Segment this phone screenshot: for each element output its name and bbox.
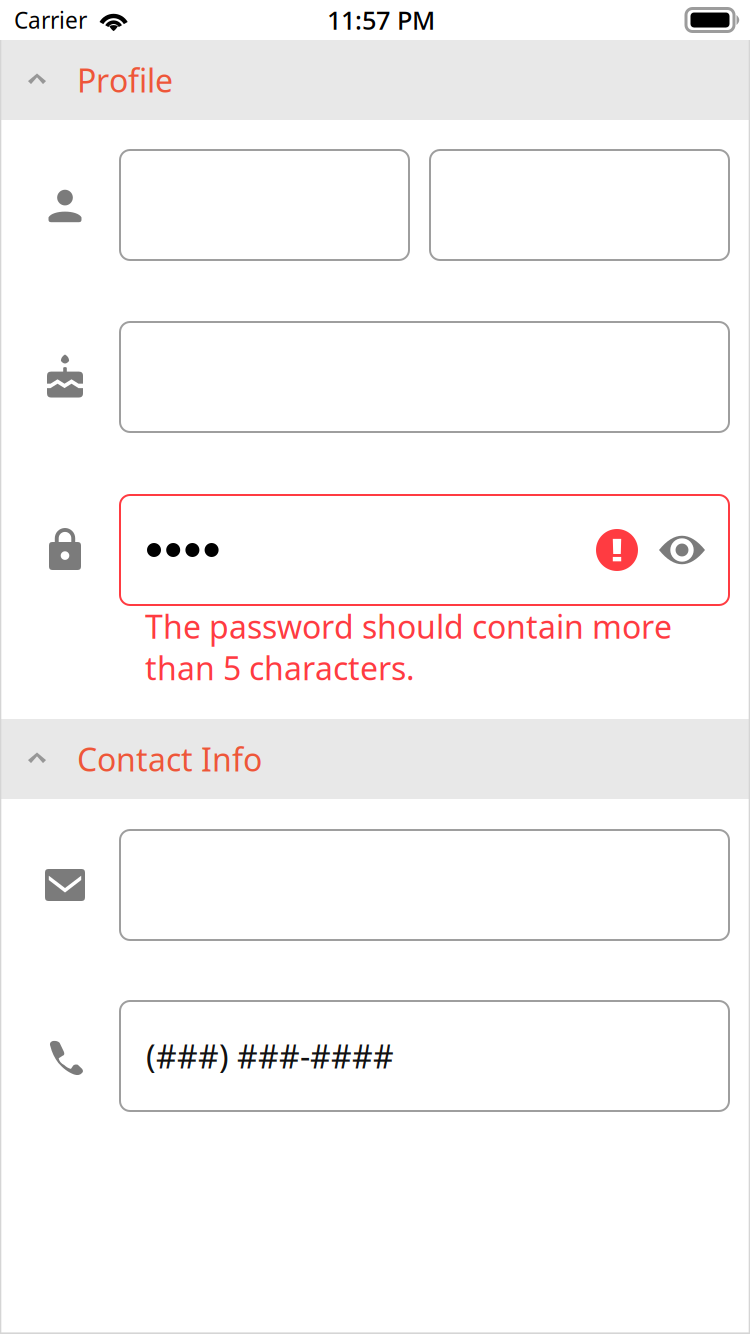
button[interactable]: Password	[120, 495, 729, 605]
staticText: 11:57 PM	[327, 3, 435, 37]
button[interactable]: Profile	[0, 40, 750, 120]
staticText: Carrier	[14, 5, 87, 35]
staticText: Contact Info	[77, 738, 262, 780]
button[interactable]: Birthday	[120, 322, 729, 432]
staticText: The password should contain more	[145, 605, 672, 647]
button[interactable]: Last name	[430, 150, 729, 260]
button[interactable]: First name	[120, 150, 409, 260]
button[interactable]: Email	[120, 830, 729, 940]
staticText: (###) ###-####	[146, 1035, 394, 1077]
button[interactable]: Contact Info	[0, 719, 750, 799]
staticText: Profile	[77, 59, 173, 101]
button[interactable]: Phone number	[120, 1001, 729, 1111]
staticText: than 5 characters.	[145, 646, 415, 689]
